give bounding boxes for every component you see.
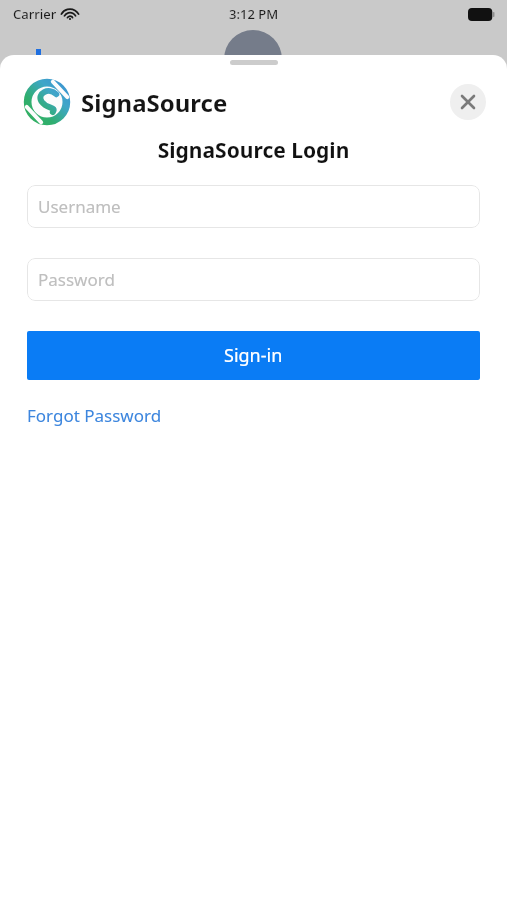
staticText: Sign-in [224,343,283,368]
button[interactable]: Close [450,84,486,120]
staticText: SignaSource Login [0,136,507,165]
staticText: Carrier [13,5,57,23]
button[interactable]: Username [27,185,480,228]
button[interactable]: Password [27,258,480,301]
staticText: Password [38,268,115,291]
staticText: Forgot Password [27,404,162,427]
button[interactable]: Sign-in [27,331,480,380]
staticText: 3:12 PM [229,5,279,23]
button[interactable]: Forgot Password [27,404,162,427]
staticText: Username [38,195,121,218]
staticText: SignaSource [81,86,228,119]
